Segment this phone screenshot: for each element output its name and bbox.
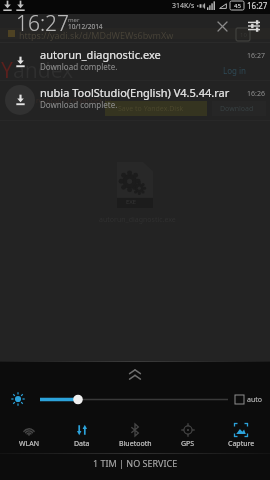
button[interactable]: Capture <box>215 410 267 453</box>
staticText: Bluetooth <box>119 439 152 449</box>
staticText: Download complete. <box>40 61 118 72</box>
button[interactable]: Collapse panel <box>0 362 270 388</box>
staticText: Download complete. <box>40 99 118 110</box>
staticText: 10 <box>240 31 247 39</box>
button[interactable]: Clear all notifications <box>210 14 234 38</box>
button[interactable]: autorun_diagnostic.exe <box>0 43 270 80</box>
button[interactable]: Data <box>56 410 108 453</box>
button[interactable]: Brightness <box>11 392 25 406</box>
button[interactable]: Brightness slider <box>40 388 228 410</box>
staticText: 10/12/2014 <box>68 22 103 31</box>
staticText: WLAN <box>19 439 39 449</box>
staticText: 314K/s <box>172 1 195 11</box>
staticText: Download <box>220 104 254 114</box>
staticText: Save to Yandex.Disk <box>118 104 184 114</box>
button[interactable]: Quick settings <box>242 14 266 38</box>
staticText: Y <box>1 56 13 85</box>
staticText: 45 <box>234 2 241 10</box>
staticText: autorun_diagnostic.exe <box>40 47 245 62</box>
button[interactable]: GPS <box>162 410 214 453</box>
staticText: 16:27 <box>247 51 265 61</box>
staticText: rocbcsh12r@yandex.ru <box>36 96 112 106</box>
button[interactable]: WLAN <box>3 410 55 453</box>
button[interactable]: Auto brightness <box>235 395 244 404</box>
staticText: Log in <box>223 65 247 76</box>
button[interactable]: Bluetooth <box>109 410 161 453</box>
staticText: 16:27 <box>16 9 70 37</box>
staticText: Data <box>74 439 90 449</box>
staticText: 16:27 <box>247 0 268 11</box>
staticText: nubia ToolStudio(English) V4.5.44.rar <box>40 85 245 100</box>
staticText: mer <box>68 16 80 24</box>
staticText: https://yadi.sk/d/MDdWEWs6bvmXw <box>19 29 174 41</box>
staticText: Capture <box>228 439 255 449</box>
staticText: andex <box>13 56 74 85</box>
staticText: auto <box>247 395 263 405</box>
staticText: GPS <box>181 439 195 449</box>
staticText: 1 TIM | NO SERVICE <box>93 457 178 469</box>
staticText: 16:26 <box>247 89 265 99</box>
button[interactable]: nubia ToolStudio(English) V4.5.44.rar <box>0 81 270 118</box>
staticText: EXE <box>126 198 137 206</box>
